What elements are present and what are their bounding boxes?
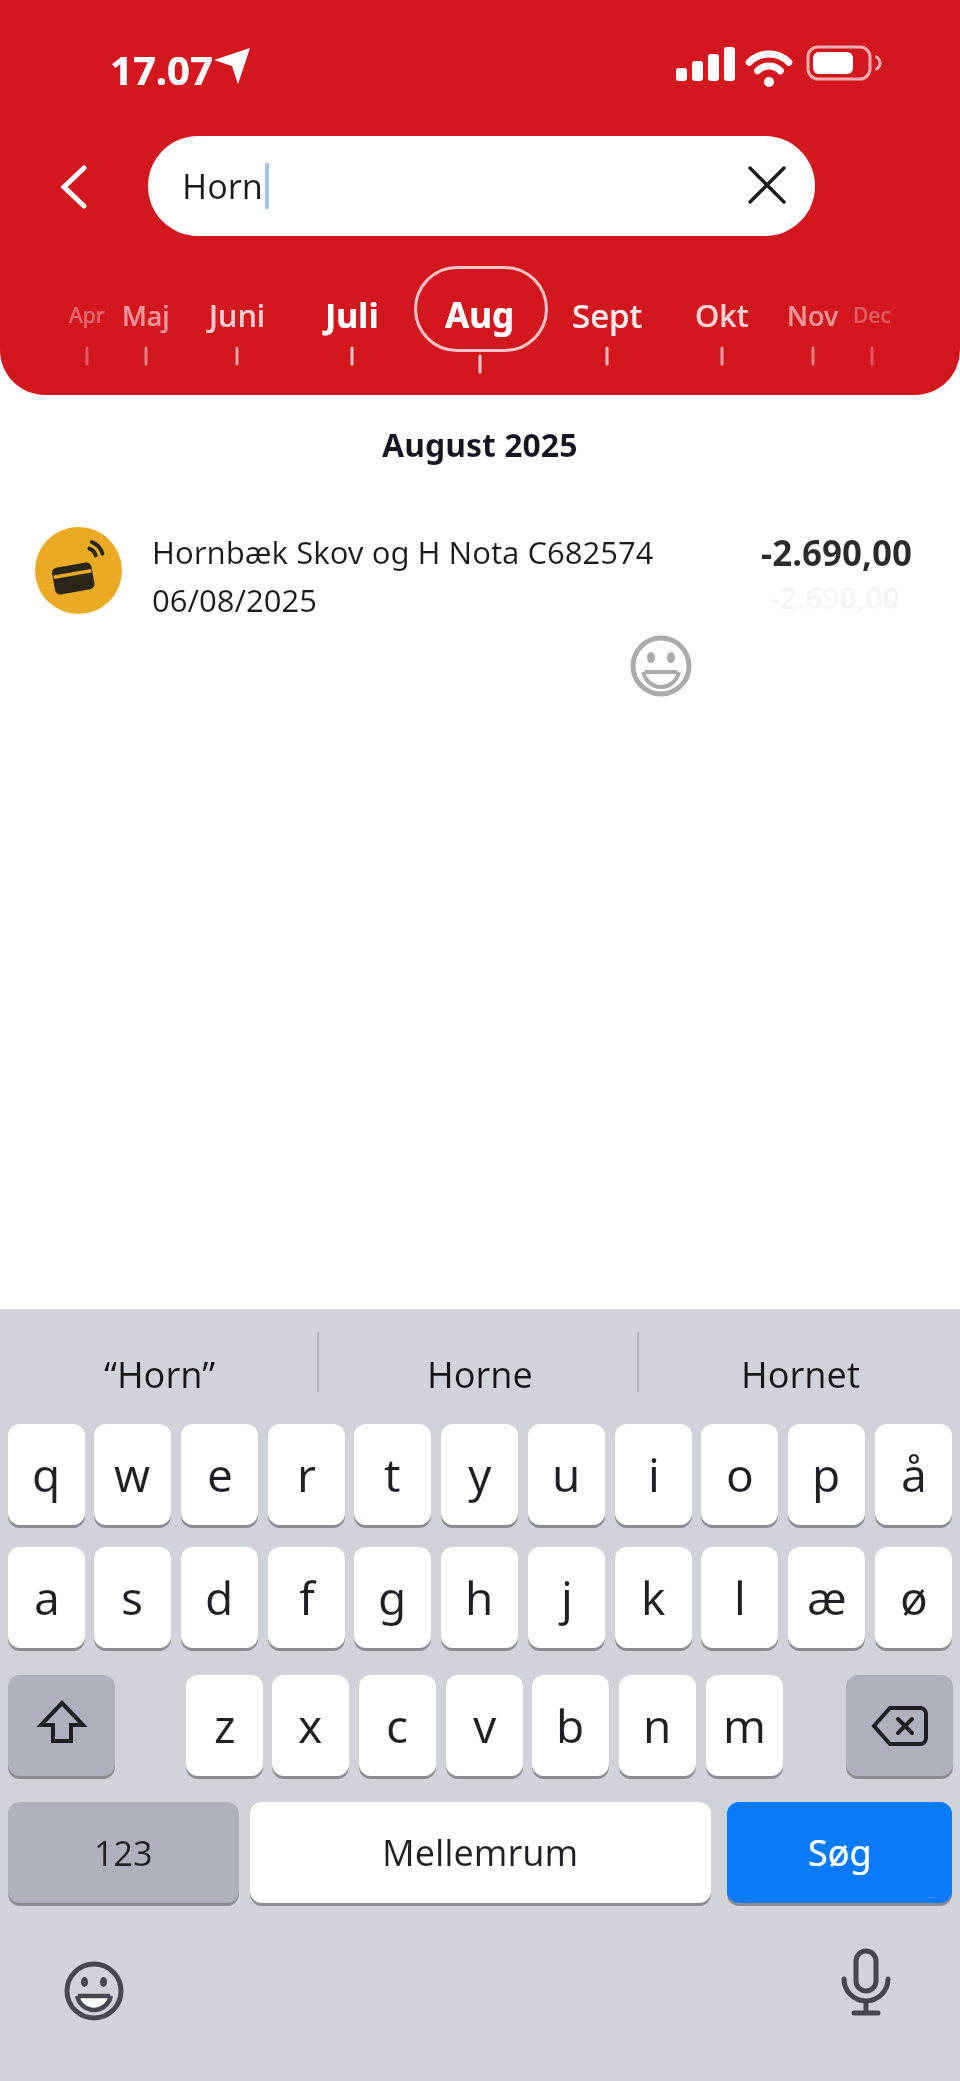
button[interactable]: Hornbæk Skov og H Nota C682574 [0, 515, 960, 627]
button[interactable]: Juni [167, 285, 307, 345]
staticText: p [812, 1443, 841, 1506]
button[interactable]: e [181, 1424, 258, 1525]
staticText: x [298, 1694, 323, 1757]
staticText: 06/08/2025 [152, 579, 317, 621]
button[interactable]: y [441, 1424, 518, 1525]
staticText: Hornbæk Skov og H Nota C682574 [152, 531, 654, 573]
staticText: t [384, 1443, 401, 1506]
staticText: l [734, 1566, 746, 1629]
button[interactable] [846, 1675, 953, 1776]
button[interactable]: u [528, 1424, 605, 1525]
staticText: Maj [122, 297, 170, 334]
staticText: q [32, 1443, 61, 1506]
staticText: Apr [69, 301, 105, 330]
button[interactable]: m [706, 1675, 783, 1776]
button[interactable]: a [8, 1547, 85, 1648]
staticText: m [723, 1694, 767, 1757]
button[interactable]: Nov [743, 285, 883, 345]
button[interactable]: Juli [282, 285, 422, 345]
staticText: Mellemrum [382, 1828, 579, 1877]
button[interactable]: w [94, 1424, 171, 1525]
staticText: e [207, 1443, 233, 1506]
staticText: b [556, 1694, 585, 1757]
button[interactable]: t [354, 1424, 431, 1525]
button[interactable]: n [619, 1675, 696, 1776]
button[interactable]: Hornet [650, 1334, 950, 1414]
staticText: August 2025 [382, 423, 578, 467]
staticText: v [473, 1694, 497, 1757]
button[interactable]: p [788, 1424, 865, 1525]
button[interactable]: Maj [76, 285, 216, 345]
staticText: 17.07 [110, 42, 213, 96]
staticText: h [465, 1566, 494, 1629]
button[interactable]: z [186, 1675, 263, 1776]
button[interactable]: ø [875, 1547, 952, 1648]
staticText: s [121, 1566, 144, 1629]
staticText: z [214, 1694, 236, 1757]
staticText: r [297, 1443, 316, 1506]
button[interactable]: 123 [8, 1802, 239, 1903]
staticText: f [299, 1566, 315, 1629]
staticText: u [552, 1443, 581, 1506]
button[interactable] [40, 150, 110, 222]
button[interactable]: Dec [802, 285, 942, 345]
staticText: Aug [445, 291, 515, 339]
button[interactable]: x [272, 1675, 349, 1776]
button[interactable]: i [615, 1424, 692, 1525]
button[interactable]: æ [788, 1547, 865, 1648]
staticText: i [648, 1443, 660, 1506]
button[interactable]: d [181, 1547, 258, 1648]
button[interactable]: Horne [330, 1334, 630, 1414]
staticText: -2.690,00 [770, 577, 900, 618]
button[interactable]: Horn [148, 136, 815, 236]
button[interactable] [8, 1675, 115, 1776]
button[interactable]: l [701, 1547, 778, 1648]
staticText: k [641, 1566, 666, 1629]
staticText: 123 [94, 1830, 153, 1876]
button[interactable]: s [94, 1547, 171, 1648]
button[interactable]: Okt [652, 285, 792, 345]
button[interactable]: Sept [537, 285, 677, 345]
staticText: Horn [182, 163, 263, 209]
button[interactable]: Apr [17, 285, 157, 345]
button[interactable]: c [359, 1675, 436, 1776]
button[interactable]: Søg [727, 1802, 952, 1903]
button[interactable]: r [268, 1424, 345, 1525]
staticText: a [34, 1566, 60, 1629]
staticText: Juni [209, 294, 266, 336]
staticText: ø [900, 1566, 928, 1629]
staticText: y [468, 1443, 492, 1506]
button[interactable]: q [8, 1424, 85, 1525]
button[interactable]: o [701, 1424, 778, 1525]
staticText: æ [807, 1566, 847, 1629]
button[interactable]: h [441, 1547, 518, 1648]
staticText: g [378, 1566, 407, 1629]
staticText: c [386, 1694, 409, 1757]
staticText: Horne [427, 1350, 533, 1399]
staticText: Hornet [741, 1350, 860, 1399]
staticText: o [726, 1443, 754, 1506]
button[interactable]: g [354, 1547, 431, 1648]
staticText: -2.690,00 [761, 529, 913, 577]
button[interactable]: k [615, 1547, 692, 1648]
button[interactable]: b [532, 1675, 609, 1776]
staticText: Dec [853, 301, 891, 330]
button[interactable]: “Horn” [10, 1334, 310, 1414]
staticText: “Horn” [104, 1350, 216, 1399]
staticText: Juli [325, 292, 379, 338]
staticText: w [114, 1443, 151, 1506]
button[interactable]: v [446, 1675, 523, 1776]
staticText: Sept [572, 293, 643, 338]
staticText: Okt [695, 294, 749, 336]
button[interactable]: Aug [410, 285, 550, 345]
staticText: n [643, 1694, 672, 1757]
staticText: Søg [808, 1828, 872, 1877]
button[interactable]: f [268, 1547, 345, 1648]
staticText: d [205, 1566, 234, 1629]
staticText: j [561, 1566, 573, 1629]
staticText: å [901, 1443, 927, 1506]
button[interactable]: Mellemrum [250, 1802, 711, 1903]
button[interactable]: å [875, 1424, 952, 1525]
button[interactable]: j [528, 1547, 605, 1648]
staticText: Nov [787, 297, 839, 334]
